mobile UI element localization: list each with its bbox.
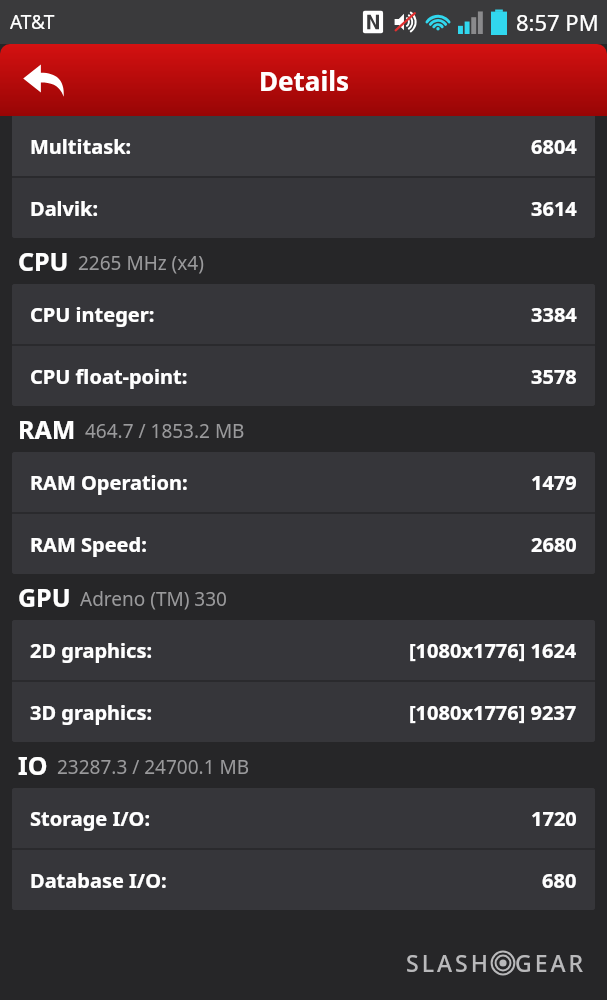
button[interactable]: CPU float-point: [12,346,595,406]
button[interactable]: Dalvik: [12,178,595,238]
staticText: Details [259,63,349,98]
staticText: Dalvik: [30,195,98,222]
staticText: RAM [18,412,76,446]
staticText: Adreno (TM) 330 [80,586,227,612]
staticText: 3D graphics: [30,699,153,726]
staticText: AT&T [10,9,55,35]
staticText: CPU float-point: [30,363,188,390]
button[interactable]: RAM Speed: [12,514,595,574]
staticText: IO [18,748,48,782]
staticText: GPU [18,580,71,614]
staticText: [1080x1776] 9237 [409,699,577,726]
staticText: [1080x1776] 1624 [409,637,577,664]
staticText: SLASH [406,947,491,978]
staticText: RAM Operation: [30,469,188,496]
staticText: 1720 [531,805,577,832]
staticText: CPU integer: [30,301,155,328]
button[interactable]: Multitask: [12,116,595,176]
staticText: 8:57 PM [516,7,599,37]
staticText: GEAR [515,947,587,978]
button[interactable]: 3D graphics: [12,682,595,742]
staticText: 23287.3 / 24700.1 MB [57,754,250,780]
staticText: Database I/O: [30,867,167,894]
button[interactable]: 2D graphics: [12,620,595,680]
staticText: Storage I/O: [30,805,151,832]
button[interactable]: Storage I/O: [12,788,595,848]
staticText: 6804 [531,133,577,160]
button[interactable]: RAM Operation: [12,452,595,512]
staticText: 1479 [531,469,577,496]
staticText: 2D graphics: [30,637,153,664]
button[interactable]: Database I/O: [12,850,595,910]
staticText: CPU [18,244,69,278]
staticText: 3384 [531,301,577,328]
staticText: Multitask: [30,133,132,160]
staticText: 2680 [531,531,577,558]
button[interactable]: CPU integer: [12,284,595,344]
staticText: 2265 MHz (x4) [78,250,204,276]
button[interactable]: Back [18,54,70,106]
staticText: 3578 [531,363,577,390]
staticText: 464.7 / 1853.2 MB [85,418,245,444]
staticText: 680 [542,867,577,894]
staticText: RAM Speed: [30,531,147,558]
staticText: 3614 [531,195,577,222]
